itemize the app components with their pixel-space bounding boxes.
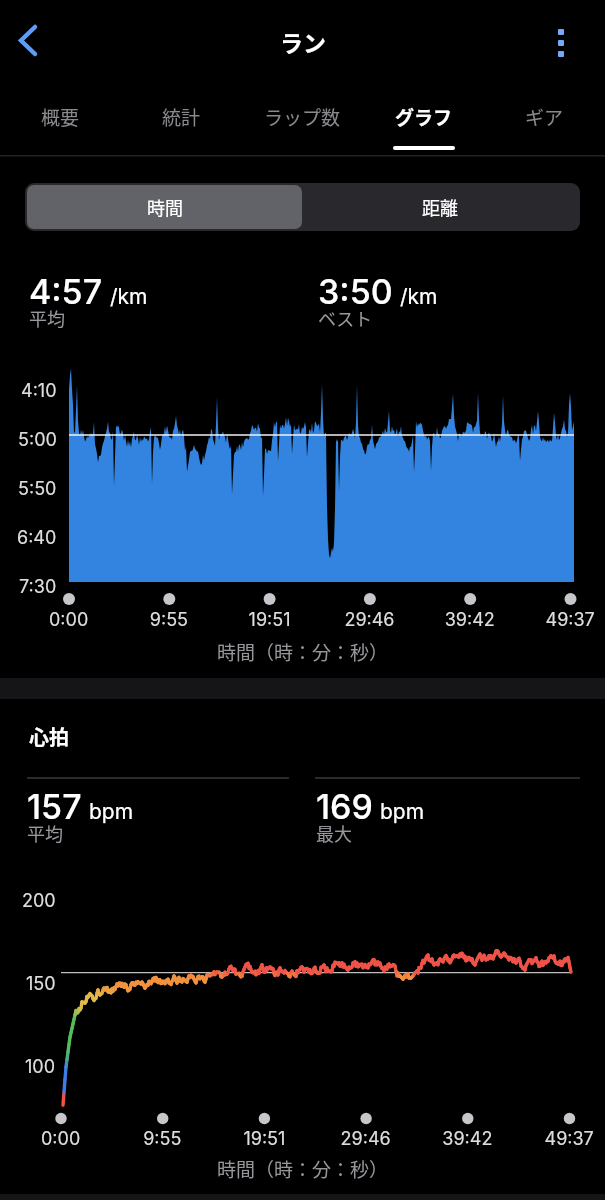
staticText: 4:57	[29, 271, 103, 312]
button[interactable]	[533, 15, 589, 71]
staticText: bpm	[89, 799, 134, 824]
button[interactable]: 概要	[0, 85, 121, 155]
staticText: ラン	[280, 25, 326, 58]
staticText: 平均	[27, 820, 63, 846]
staticText: グラフ	[395, 103, 453, 131]
staticText: 157	[27, 786, 82, 827]
button[interactable]	[2, 13, 58, 69]
staticText: 心拍	[29, 722, 69, 751]
button[interactable]: 距離	[302, 185, 578, 229]
staticText: 3:50	[318, 271, 393, 312]
staticText: 距離	[422, 194, 458, 220]
staticText: bpm	[380, 799, 425, 824]
staticText: 時間（時：分：秒）	[217, 638, 389, 666]
button[interactable]: 統計	[121, 85, 242, 155]
staticText: 時間（時：分：秒）	[217, 1155, 389, 1183]
staticText: ギア	[525, 103, 564, 131]
staticText: 概要	[41, 103, 80, 131]
button[interactable]: ギア	[484, 85, 605, 155]
staticText: /km	[110, 284, 148, 309]
staticText: 統計	[162, 103, 201, 131]
staticText: /km	[400, 284, 438, 309]
button[interactable]: グラフ	[363, 85, 484, 155]
staticText: 最大	[316, 820, 352, 846]
staticText: 時間	[147, 194, 183, 220]
staticText: ベスト	[318, 305, 373, 331]
staticText: 平均	[29, 305, 65, 331]
button[interactable]: ラップ数	[242, 85, 363, 155]
staticText: ラップ数	[264, 103, 341, 131]
button[interactable]: 時間	[27, 185, 302, 229]
staticText: 169	[316, 786, 373, 827]
